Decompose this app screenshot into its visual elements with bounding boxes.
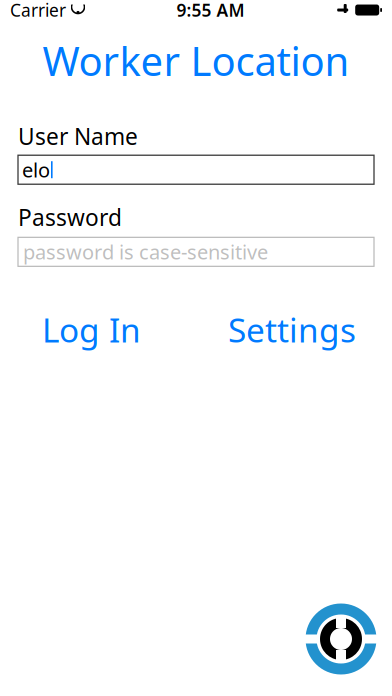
staticText: Carrier bbox=[10, 0, 66, 21]
button[interactable]: Settings bbox=[210, 299, 374, 360]
button[interactable]: Log In bbox=[18, 299, 165, 360]
staticText: Password bbox=[18, 202, 122, 232]
staticText: elo bbox=[22, 156, 50, 183]
staticText: 9:55 AM bbox=[177, 0, 245, 21]
staticText: Log In bbox=[42, 307, 141, 352]
staticText: Worker Location bbox=[42, 34, 349, 87]
staticText: password is case-sensitive bbox=[23, 238, 268, 265]
staticText: User Name bbox=[18, 121, 138, 151]
staticText: Settings bbox=[228, 307, 356, 352]
